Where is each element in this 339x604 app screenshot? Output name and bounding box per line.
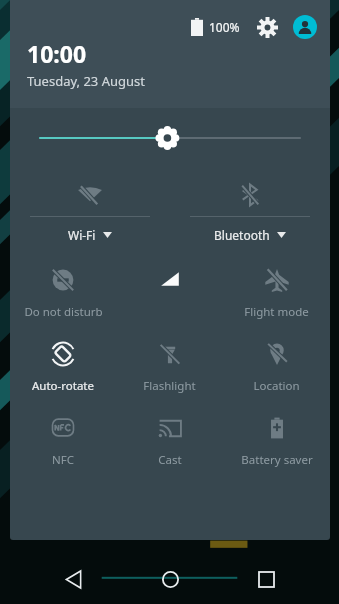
staticText: Location xyxy=(253,378,300,393)
button[interactable]: Settings xyxy=(254,14,280,40)
staticText: Auto-rotate xyxy=(32,378,94,393)
staticText: Flashlight xyxy=(143,378,196,393)
button[interactable]: NFC xyxy=(10,409,116,469)
staticText: Battery saver xyxy=(241,452,313,467)
button[interactable]: Mobile data xyxy=(116,261,223,321)
staticText: 10:00 xyxy=(27,38,87,69)
button[interactable]: User profile xyxy=(292,14,318,40)
staticText: Tuesday, 23 August xyxy=(27,72,145,90)
staticText: Bluetooth xyxy=(214,227,270,243)
button[interactable]: Cast xyxy=(116,409,223,469)
button[interactable]: Back xyxy=(49,555,97,603)
button[interactable]: Battery saver xyxy=(223,409,330,469)
staticText: Flight mode xyxy=(244,304,309,319)
button[interactable]: Brightness xyxy=(10,120,330,156)
staticText: Do not disturb xyxy=(24,304,103,319)
button[interactable]: Flashlight xyxy=(116,335,223,395)
button[interactable]: Home xyxy=(146,555,194,603)
button[interactable]: Location xyxy=(223,335,330,395)
button[interactable]: Auto-rotate xyxy=(10,335,116,395)
staticText: 100% xyxy=(209,19,240,35)
button[interactable]: Wi-Fi xyxy=(10,178,170,243)
button[interactable]: Bluetooth xyxy=(170,178,330,243)
button[interactable]: Flight mode xyxy=(223,261,330,321)
button[interactable]: Recent apps xyxy=(242,555,290,603)
staticText: Wi-Fi xyxy=(68,227,96,243)
button[interactable]: Do not disturb xyxy=(10,261,116,321)
staticText: NFC xyxy=(52,452,74,467)
staticText: Cast xyxy=(158,452,182,467)
